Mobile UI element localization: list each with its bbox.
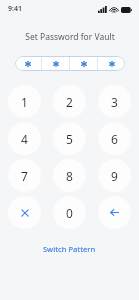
button[interactable]: 4 xyxy=(8,122,41,155)
button[interactable]: 7 xyxy=(8,159,41,192)
staticText: 9:41 xyxy=(8,4,22,14)
button[interactable]: 8 xyxy=(53,159,86,192)
staticText: Switch Pattern xyxy=(43,244,96,254)
button[interactable]: 1 xyxy=(8,85,41,118)
staticText: 2 xyxy=(66,94,73,110)
button[interactable]: 5 xyxy=(53,122,86,155)
staticText: 3 xyxy=(111,94,118,110)
staticText: 6 xyxy=(111,131,118,147)
staticText: 4 xyxy=(21,131,28,147)
button[interactable]: 2 xyxy=(53,85,86,118)
button[interactable]: 9 xyxy=(98,159,131,192)
button[interactable]: Switch Pattern xyxy=(37,241,102,257)
button[interactable] xyxy=(15,56,125,71)
button[interactable]: Clear xyxy=(8,196,41,229)
staticText: 9 xyxy=(111,168,118,184)
staticText: 0 xyxy=(66,205,73,221)
button[interactable]: 3 xyxy=(98,85,131,118)
button[interactable]: 0 xyxy=(53,196,86,229)
button[interactable]: 6 xyxy=(98,122,131,155)
staticText: 8 xyxy=(66,168,73,184)
staticText: 5 xyxy=(66,131,73,147)
staticText: 1 xyxy=(21,94,28,110)
button[interactable]: Backspace xyxy=(98,196,131,229)
staticText: Set Password for Vault xyxy=(25,31,115,43)
staticText: 7 xyxy=(21,168,28,184)
